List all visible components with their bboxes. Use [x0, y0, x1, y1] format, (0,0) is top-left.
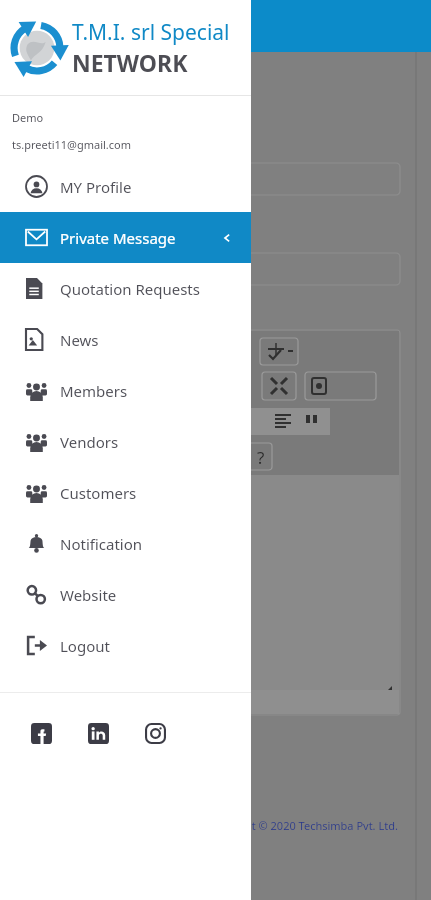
button[interactable]: Vendors — [0, 416, 251, 467]
button[interactable]: Private Message — [0, 212, 251, 263]
button[interactable]: Members — [0, 365, 251, 416]
button[interactable]: MY Profile — [0, 161, 251, 212]
staticText: Private Message — [60, 228, 176, 248]
button[interactable]: Logout — [0, 620, 251, 671]
staticText: Customers — [60, 483, 137, 503]
button[interactable]: T.M.I. srl Special — [0, 0, 251, 95]
staticText: T.M.I. srl Special — [72, 18, 230, 47]
staticText: MY Profile — [60, 177, 132, 197]
button[interactable]: Notification — [0, 518, 251, 569]
button[interactable]: Open navigation menu — [12, 8, 48, 44]
staticText: Demo — [12, 110, 44, 125]
staticText: Website — [60, 585, 117, 605]
staticText: Copyright © 2020 Techsimba Pvt. Ltd. — [205, 818, 398, 833]
button[interactable]: Customers — [0, 467, 251, 518]
staticText: Quotation Requests — [60, 279, 200, 299]
button[interactable]: LinkedIn — [84, 719, 113, 748]
button[interactable]: Website — [0, 569, 251, 620]
staticText: Vendors — [60, 432, 119, 452]
button[interactable]: Facebook — [27, 719, 56, 748]
button[interactable]: Quotation Requests — [0, 263, 251, 314]
staticText: News — [60, 330, 99, 350]
staticText: NETWORK — [72, 47, 188, 78]
staticText: Notification — [60, 534, 143, 554]
staticText: ? — [257, 446, 265, 464]
staticText: Logout — [60, 636, 110, 656]
button[interactable]: Instagram — [141, 719, 170, 748]
staticText: Members — [60, 381, 128, 401]
staticText: ts.preeti11@gmail.com — [12, 137, 132, 152]
button[interactable]: News — [0, 314, 251, 365]
